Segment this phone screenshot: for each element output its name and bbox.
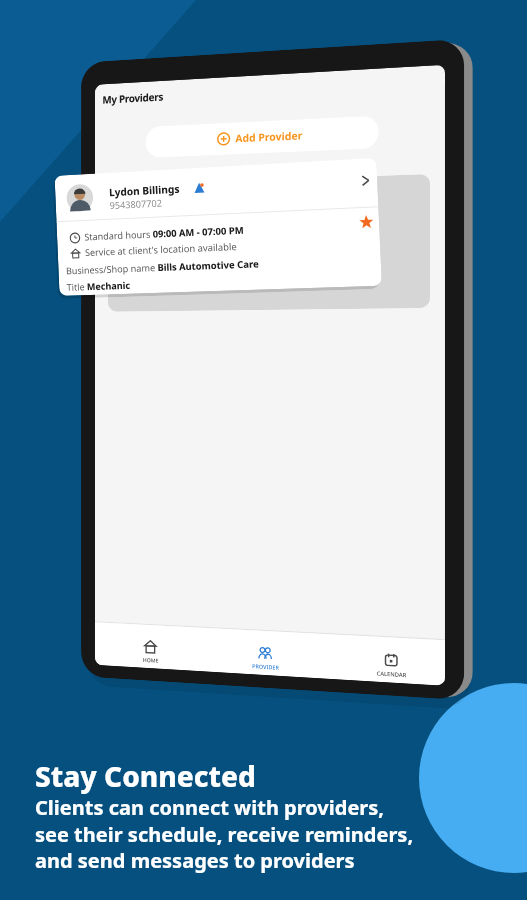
staticText: PROVIDER bbox=[252, 662, 279, 671]
staticText: Add Provider bbox=[235, 128, 303, 145]
button[interactable]: CALENDAR bbox=[360, 651, 423, 679]
staticText: Standard hours 09:00 AM - 07:00 PM bbox=[84, 224, 244, 243]
staticText: HOME bbox=[143, 656, 159, 664]
staticText: My Providers bbox=[102, 90, 164, 107]
staticText: Service at client's location available bbox=[85, 240, 237, 259]
staticText: Title Mechanic bbox=[66, 279, 130, 294]
button[interactable]: PROVIDER bbox=[235, 644, 295, 672]
button[interactable]: HOME bbox=[122, 638, 179, 665]
staticText: CALENDAR bbox=[377, 669, 407, 678]
staticText: Business/Shop name Bills Automotive Care bbox=[66, 257, 260, 277]
staticText: Lydon Billings bbox=[109, 182, 180, 199]
button[interactable]: Lydon Billings bbox=[54, 158, 382, 296]
button[interactable]: Add Provider bbox=[146, 115, 379, 158]
staticText: Stay Connected bbox=[35, 757, 256, 795]
staticText: 9543807702 bbox=[109, 196, 163, 212]
staticText: Clients can connect with providers, see … bbox=[35, 794, 414, 874]
